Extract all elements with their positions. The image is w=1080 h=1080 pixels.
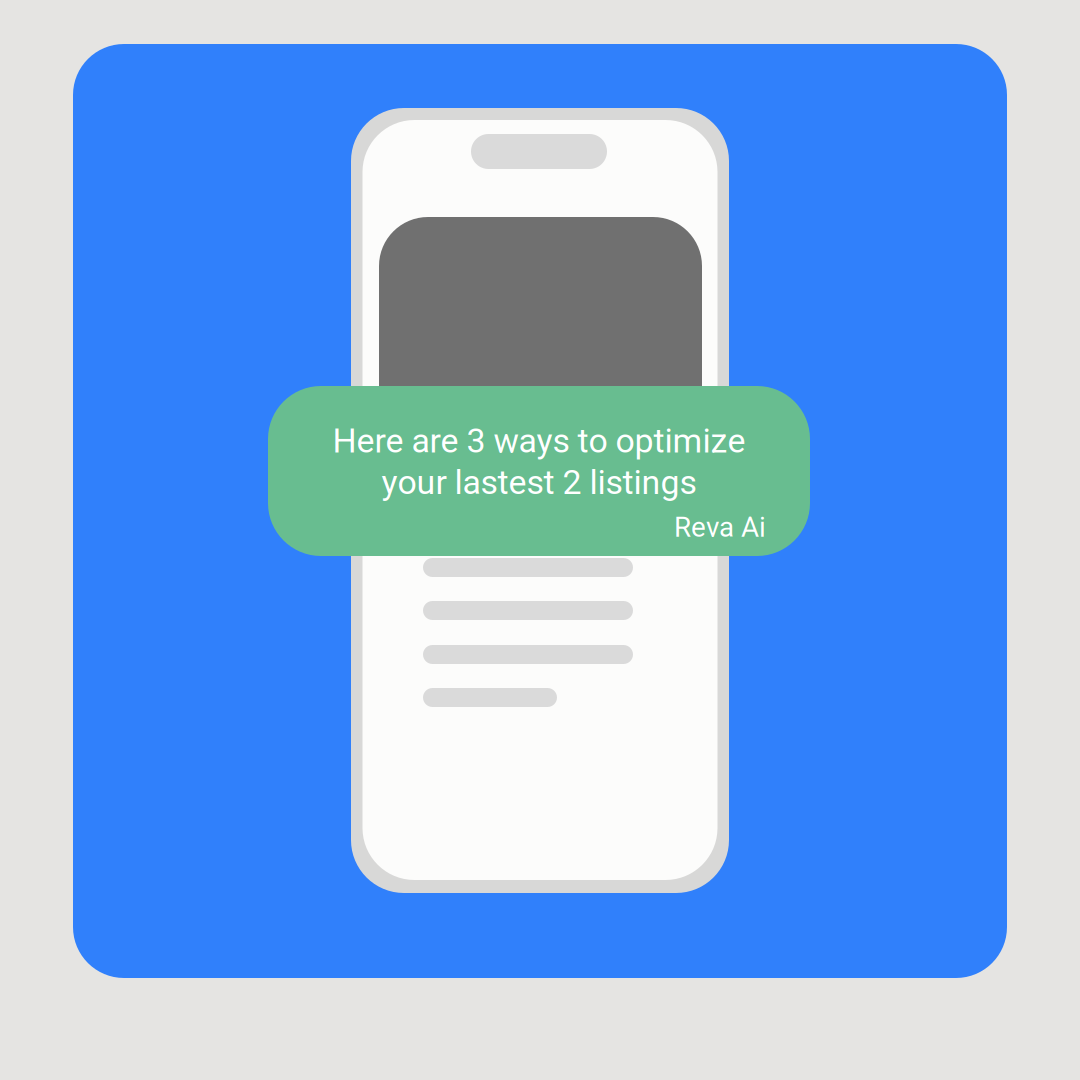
staticText: Here are 3 ways to optimize	[332, 421, 745, 461]
button[interactable]: Here are 3 ways to optimize	[268, 386, 810, 556]
staticText: Reva Ai	[674, 511, 766, 543]
staticText: your lastest 2 listings	[381, 463, 696, 502]
